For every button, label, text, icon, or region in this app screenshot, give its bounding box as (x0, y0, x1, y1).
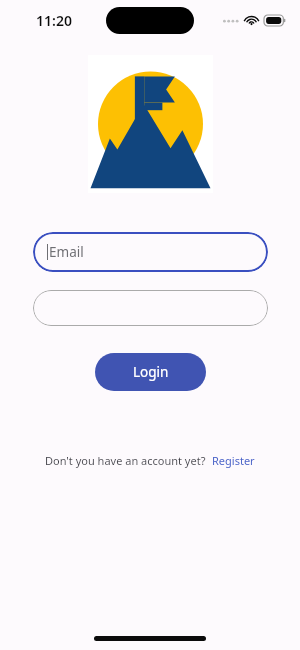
staticText: Email (49, 243, 84, 261)
button[interactable]: Email (33, 232, 268, 272)
staticText: Login (133, 363, 169, 381)
staticText: Register (212, 453, 255, 468)
button[interactable] (33, 290, 268, 326)
staticText: 11:20 (36, 11, 72, 30)
staticText: Don't you have an account yet? (45, 453, 206, 468)
button[interactable]: Register (212, 453, 255, 468)
button[interactable]: Login (95, 353, 206, 391)
